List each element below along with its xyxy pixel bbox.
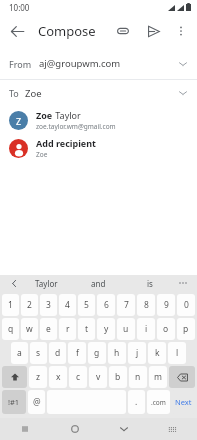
button[interactable]: To (0, 80, 197, 106)
button[interactable]: Home (50, 418, 99, 440)
button[interactable]: Send (138, 16, 168, 46)
staticText: . (135, 396, 138, 408)
staticText: v (96, 371, 101, 383)
button[interactable]: More options (168, 18, 194, 44)
button[interactable]: is (124, 278, 176, 289)
staticText: f (76, 347, 79, 359)
button[interactable]: More suggestions (176, 276, 190, 290)
button[interactable]: 1 (2, 294, 19, 316)
staticText: Add recipient (36, 137, 97, 149)
button[interactable]: Recents (0, 418, 50, 440)
button[interactable]: @ (28, 390, 45, 414)
button[interactable]: i (137, 318, 155, 340)
button[interactable]: Keyboard switcher (148, 418, 197, 440)
staticText: is (147, 278, 153, 289)
button[interactable]: 6 (97, 294, 115, 316)
button[interactable]: l (168, 342, 186, 364)
button[interactable]: 7 (117, 294, 135, 316)
staticText: Taylor (53, 109, 81, 121)
button[interactable]: Next (172, 390, 195, 414)
staticText: 0 (184, 299, 189, 311)
button[interactable]: w (21, 318, 38, 340)
staticText: q (8, 323, 14, 335)
button[interactable]: o (157, 318, 175, 340)
staticText: 4 (65, 299, 70, 311)
button[interactable]: t (78, 318, 95, 340)
button[interactable]: 0 (177, 294, 195, 316)
button[interactable]: 5 (78, 294, 95, 316)
button[interactable]: h (108, 342, 126, 364)
button[interactable]: 8 (137, 294, 155, 316)
button[interactable]: 2 (21, 294, 38, 316)
staticText: h (114, 347, 120, 359)
button[interactable]: 9 (157, 294, 175, 316)
staticText: b (115, 371, 121, 383)
button[interactable]: k (148, 342, 166, 364)
staticText: r (66, 323, 70, 335)
button[interactable]: Backspace (169, 366, 195, 388)
button[interactable]: Previous suggestions (7, 276, 21, 290)
staticText: aj@groupwm.com (39, 57, 121, 70)
button[interactable]: e (40, 318, 57, 340)
button[interactable]: c (69, 366, 87, 388)
button[interactable]: . (128, 390, 145, 414)
staticText: 10:00 (9, 2, 30, 13)
button[interactable]: 3 (40, 294, 57, 316)
button[interactable]: Z (0, 106, 197, 134)
staticText: Compose (38, 22, 96, 40)
staticText: p (183, 323, 189, 335)
button[interactable]: a (11, 342, 28, 364)
button[interactable]: .com (147, 390, 170, 414)
staticText: !#1 (8, 397, 20, 407)
button[interactable]: Taylor (21, 278, 72, 289)
staticText: Next (175, 397, 192, 407)
button[interactable]: Hide keyboard (99, 418, 148, 440)
staticText: 5 (84, 299, 89, 311)
staticText: zoe.taylor.wm@gmail.com (36, 122, 116, 131)
staticText: j (136, 347, 139, 359)
staticText: Zoe (36, 150, 48, 159)
staticText: From (9, 58, 32, 70)
button[interactable]: p (177, 318, 195, 340)
staticText: g (94, 347, 100, 359)
staticText: 8 (144, 299, 149, 311)
button[interactable]: Shift (2, 366, 27, 388)
button[interactable]: r (59, 318, 76, 340)
button[interactable]: g (88, 342, 106, 364)
staticText: 6 (104, 299, 109, 311)
staticText: Taylor (35, 278, 58, 289)
staticText: d (55, 347, 61, 359)
staticText: x (56, 371, 61, 383)
staticText: m (154, 371, 162, 383)
button[interactable]: u (117, 318, 135, 340)
staticText: c (76, 371, 81, 383)
button[interactable]: y (97, 318, 115, 340)
staticText: s (36, 347, 41, 359)
button[interactable]: z (29, 366, 47, 388)
staticText: 3 (46, 299, 51, 311)
button[interactable]: b (109, 366, 127, 388)
staticText: e (46, 323, 51, 335)
button[interactable]: From (0, 48, 197, 79)
button[interactable]: Attach (108, 16, 138, 46)
button[interactable]: 4 (59, 294, 76, 316)
button[interactable]: Back (0, 14, 34, 48)
staticText: u (123, 323, 129, 335)
staticText: z (36, 371, 40, 383)
staticText: @ (33, 396, 41, 408)
button[interactable]: v (89, 366, 107, 388)
button[interactable]: Add recipient (0, 134, 197, 162)
button[interactable]: x (49, 366, 67, 388)
button[interactable]: q (2, 318, 19, 340)
button[interactable]: f (68, 342, 86, 364)
button[interactable]: d (49, 342, 66, 364)
button[interactable]: s (30, 342, 47, 364)
button[interactable]: !#1 (2, 390, 26, 414)
button[interactable]: j (128, 342, 146, 364)
button[interactable]: and (72, 278, 124, 289)
button[interactable]: n (129, 366, 147, 388)
staticText: 2 (27, 299, 32, 311)
button[interactable]: m (149, 366, 167, 388)
staticText: w (26, 323, 33, 335)
